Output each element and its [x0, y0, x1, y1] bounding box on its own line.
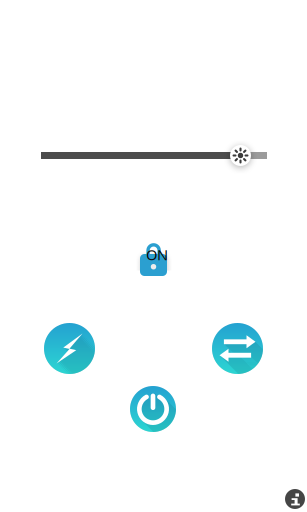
staticText: ON: [146, 245, 168, 264]
button[interactable]: Info: [285, 489, 305, 509]
button[interactable]: Power: [130, 386, 176, 432]
button[interactable]: ON: [140, 243, 174, 277]
button[interactable]: Switch: [212, 323, 263, 374]
button[interactable]: Boost: [44, 323, 95, 374]
button[interactable]: Brightness: [230, 145, 251, 166]
